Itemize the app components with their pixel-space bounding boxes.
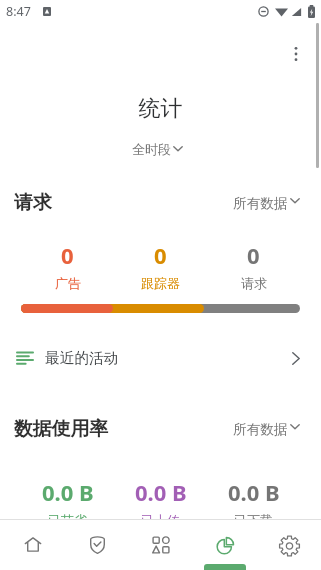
button[interactable]: 0.0 B bbox=[21, 477, 114, 528]
staticText: 0 bbox=[247, 240, 260, 270]
staticText: 0.0 B bbox=[228, 477, 280, 507]
button[interactable]: 0 bbox=[114, 240, 207, 291]
staticText: 请求 bbox=[14, 191, 52, 215]
staticText: 全时段 bbox=[132, 141, 171, 157]
staticText: 8:47 bbox=[6, 3, 31, 20]
staticText: 广告 bbox=[55, 275, 81, 291]
staticText: 0 bbox=[61, 240, 74, 270]
staticText: 已节省 bbox=[48, 512, 87, 528]
button[interactable]: 最近的活动 bbox=[0, 340, 321, 376]
button[interactable]: 所有数据 bbox=[233, 195, 300, 212]
button[interactable]: Statistics bbox=[193, 519, 257, 570]
button[interactable]: Home bbox=[0, 519, 65, 570]
button[interactable]: More options bbox=[280, 38, 312, 70]
button[interactable]: Protection bbox=[65, 519, 129, 570]
button[interactable]: 全时段 bbox=[132, 141, 183, 157]
staticText: 已上传 bbox=[141, 512, 180, 528]
button[interactable]: 0 bbox=[207, 240, 300, 291]
button[interactable]: Settings bbox=[257, 519, 321, 570]
staticText: 0.0 B bbox=[135, 477, 187, 507]
staticText: 跟踪器 bbox=[141, 275, 180, 291]
staticText: 请求 bbox=[241, 275, 267, 291]
staticText: 数据使用率 bbox=[14, 417, 108, 441]
staticText: 所有数据 bbox=[233, 421, 288, 438]
button[interactable]: Apps bbox=[129, 519, 193, 570]
staticText: 最近的活动 bbox=[45, 349, 119, 368]
button[interactable]: 0.0 B bbox=[114, 477, 207, 528]
staticText: 0 bbox=[154, 240, 167, 270]
button[interactable]: 0 bbox=[21, 240, 114, 291]
button[interactable]: 所有数据 bbox=[233, 421, 300, 438]
staticText: 0.0 B bbox=[42, 477, 94, 507]
staticText: 已下载 bbox=[234, 512, 273, 528]
button[interactable]: 0.0 B bbox=[207, 477, 300, 528]
staticText: 所有数据 bbox=[233, 195, 288, 212]
staticText: 统计 bbox=[0, 95, 321, 123]
